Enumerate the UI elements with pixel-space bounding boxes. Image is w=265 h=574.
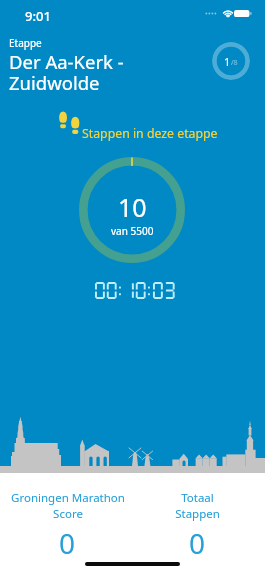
staticText: Groningen Marathon Score xyxy=(11,490,125,521)
staticText: Der Aa-Kerk - Zuidwolde xyxy=(9,49,124,95)
staticText: 9:01 xyxy=(25,7,51,25)
staticText: /8 xyxy=(231,58,238,68)
staticText: Totaal Stappen xyxy=(175,490,220,521)
button[interactable]: Groningen Marathon Score xyxy=(3,490,132,562)
staticText: Stappen in deze etappe xyxy=(82,125,218,142)
staticText: van 5500 xyxy=(111,224,154,238)
button[interactable]: Etappe 1 van 8 xyxy=(212,42,250,80)
button[interactable]: Totaal Stappen xyxy=(132,490,262,562)
staticText: 1 xyxy=(224,54,231,69)
staticText: 10 xyxy=(118,190,147,224)
staticText: 0 xyxy=(59,524,76,562)
staticText: Etappe xyxy=(9,36,42,50)
staticText: 0 xyxy=(189,524,206,562)
